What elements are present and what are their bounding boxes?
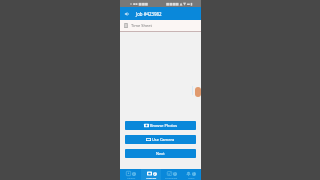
button[interactable]: Browse Photos	[125, 121, 196, 130]
button[interactable]: 2	[141, 169, 161, 180]
staticText: 1	[193, 172, 195, 176]
button[interactable]: Use Camera	[125, 135, 196, 144]
staticText: Assigned	[146, 176, 157, 179]
staticText: ‹› ▪▪ ■■■	[130, 1, 149, 6]
staticText: ■■■■ ▲ ▼ ▬ ▮	[166, 1, 193, 6]
button[interactable]: 9	[161, 169, 181, 180]
staticText: 4	[133, 172, 135, 176]
button[interactable]: Time Sheet	[120, 20, 201, 31]
staticText: 9	[174, 172, 176, 176]
staticText: Job #423982	[136, 11, 162, 17]
button[interactable]: Next	[125, 149, 196, 158]
staticText: Browse Photos	[150, 123, 178, 128]
button[interactable]: 4	[120, 169, 141, 180]
staticText: Nearby	[127, 176, 136, 179]
button[interactable]: Back	[120, 7, 133, 21]
staticText: 2	[154, 172, 156, 176]
staticText: Next	[156, 151, 165, 156]
staticText: Time Sheet	[131, 23, 152, 28]
staticText: Completed	[165, 176, 178, 179]
button[interactable]: 1	[181, 169, 201, 180]
staticText: Use Camera	[152, 137, 175, 142]
staticText: Alerts	[188, 176, 195, 179]
